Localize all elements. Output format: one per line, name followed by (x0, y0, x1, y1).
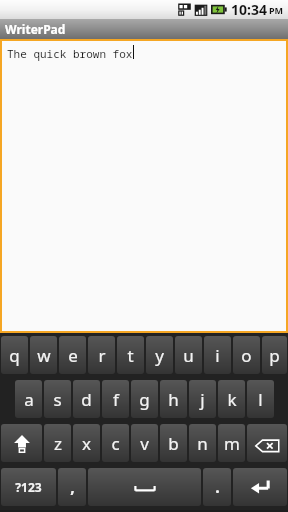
staticText: u (183, 344, 194, 367)
staticText: p (269, 344, 280, 367)
staticText: 10:34 (231, 0, 267, 19)
button[interactable]: h (160, 380, 187, 418)
button[interactable]: i (204, 336, 231, 374)
staticText: c (111, 432, 120, 455)
staticText: d (81, 388, 92, 411)
button[interactable]: s (44, 380, 71, 418)
staticText: o (241, 344, 252, 367)
button[interactable]: t (117, 336, 144, 374)
button[interactable]: r (88, 336, 115, 374)
staticText: y (155, 344, 164, 367)
staticText: ?123 (15, 479, 42, 495)
button[interactable]: Space (88, 468, 201, 506)
staticText: . (215, 476, 220, 498)
button[interactable]: Enter (233, 468, 287, 506)
staticText: The quick brown fox (7, 46, 133, 61)
button[interactable]: y (146, 336, 173, 374)
staticText: z (54, 432, 62, 455)
staticText: m (224, 432, 240, 455)
staticText: g (139, 388, 150, 411)
button[interactable]: Shift (1, 424, 42, 462)
button[interactable]: c (102, 424, 129, 462)
button[interactable]: w (30, 336, 57, 374)
staticText: j (200, 388, 205, 411)
staticText: w (37, 344, 51, 367)
staticText: x (82, 432, 91, 455)
staticText: e (68, 344, 78, 367)
button[interactable]: Delete (247, 424, 287, 462)
button[interactable]: e (59, 336, 86, 374)
staticText: i (215, 344, 220, 367)
button[interactable]: b (160, 424, 187, 462)
staticText: h (168, 388, 179, 411)
button[interactable]: v (131, 424, 158, 462)
staticText: r (98, 344, 106, 367)
button[interactable]: n (189, 424, 216, 462)
staticText: a (24, 388, 34, 411)
button[interactable]: m (218, 424, 245, 462)
staticText: q (9, 344, 20, 367)
button[interactable]: ?123 (1, 468, 56, 506)
button[interactable]: o (233, 336, 260, 374)
button[interactable]: a (15, 380, 42, 418)
staticText: k (227, 388, 237, 411)
button[interactable]: l (247, 380, 274, 418)
button[interactable]: d (73, 380, 100, 418)
button[interactable]: k (218, 380, 245, 418)
button[interactable]: , (58, 468, 86, 506)
button[interactable]: u (175, 336, 202, 374)
staticText: l (258, 388, 263, 411)
staticText: , (70, 476, 75, 498)
staticText: t (127, 344, 134, 367)
button[interactable]: p (262, 336, 287, 374)
staticText: v (140, 432, 149, 455)
staticText: WriterPad (5, 21, 66, 37)
button[interactable]: . (203, 468, 231, 506)
staticText: PM (269, 4, 284, 16)
staticText: b (168, 432, 179, 455)
staticText: f (113, 388, 119, 411)
button[interactable]: f (102, 380, 129, 418)
button[interactable]: z (44, 424, 71, 462)
button[interactable]: j (189, 380, 216, 418)
button[interactable]: x (73, 424, 100, 462)
button[interactable]: q (1, 336, 28, 374)
staticText: s (53, 388, 62, 411)
button[interactable]: g (131, 380, 158, 418)
staticText: n (197, 432, 208, 455)
